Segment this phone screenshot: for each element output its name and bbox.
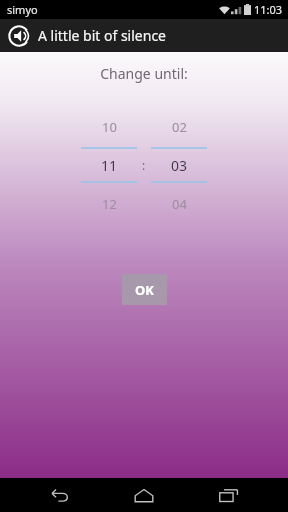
staticText: 11:03 (254, 2, 283, 17)
staticText: : (142, 157, 146, 173)
staticText: A little bit of silence (38, 26, 167, 45)
button[interactable]: Minutes (151, 106, 207, 224)
staticText: OK (135, 281, 154, 299)
staticText: simyo (7, 2, 38, 17)
button[interactable]: Home (120, 478, 168, 512)
staticText: 10 (102, 118, 117, 136)
button[interactable]: Back (36, 478, 84, 512)
staticText: Change until: (100, 64, 188, 83)
button[interactable]: Hours (81, 106, 137, 224)
button[interactable]: Recent apps (204, 478, 252, 512)
staticText: 11 (101, 156, 118, 175)
staticText: 02 (172, 118, 187, 136)
staticText: 04 (172, 195, 187, 213)
staticText: 03 (171, 156, 188, 175)
button[interactable]: OK (122, 274, 167, 305)
other: App icon (8, 25, 30, 47)
button[interactable]: App icon (0, 19, 288, 52)
staticText: 12 (102, 195, 117, 213)
